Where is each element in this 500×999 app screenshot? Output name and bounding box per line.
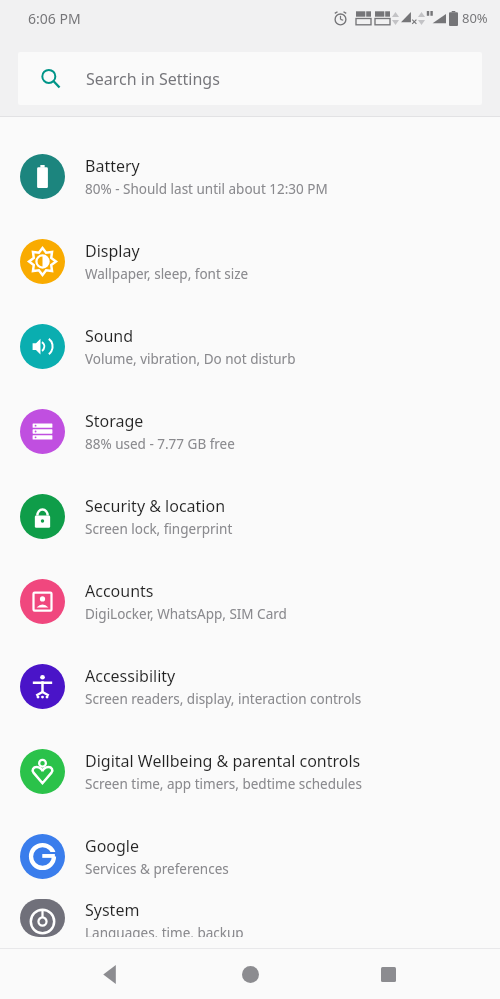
staticText: Screen readers, display, interaction con… [85, 690, 362, 708]
staticText: Sound [85, 325, 134, 347]
button[interactable]: Accounts [0, 559, 500, 644]
staticText: Google [85, 835, 140, 857]
staticText: Screen lock, fingerprint [85, 520, 233, 538]
button[interactable]: Accessibility [0, 644, 500, 729]
button[interactable]: Digital Wellbeing & parental controls [0, 729, 500, 814]
staticText: System [85, 899, 140, 921]
staticText: 88% used - 7.77 GB free [85, 435, 235, 453]
staticText: Accounts [85, 580, 154, 602]
button[interactable]: Battery [0, 134, 500, 219]
button[interactable]: Sound [0, 304, 500, 389]
button[interactable]: Security & location [0, 474, 500, 559]
staticText: Battery [85, 155, 140, 177]
button[interactable]: Recent apps [363, 949, 413, 999]
staticText: 80% - Should last until about 12:30 PM [85, 180, 328, 198]
staticText: Security & location [85, 495, 226, 517]
staticText: Search in Settings [86, 68, 220, 90]
button[interactable]: Home [225, 949, 275, 999]
staticText: Screen time, app timers, bedtime schedul… [85, 775, 362, 793]
staticText: Languages, time, backup [85, 924, 244, 937]
staticText: 80% [462, 9, 488, 27]
staticText: Digital Wellbeing & parental controls [85, 750, 361, 772]
button[interactable]: Display [0, 219, 500, 304]
staticText: Display [85, 240, 140, 262]
staticText: Wallpaper, sleep, font size [85, 265, 249, 283]
staticText: 6:06 PM [28, 9, 81, 28]
button[interactable]: Back [85, 949, 135, 999]
staticText: Accessibility [85, 665, 176, 687]
button[interactable]: Storage [0, 389, 500, 474]
button[interactable]: System [0, 899, 500, 937]
staticText: DigiLocker, WhatsApp, SIM Card [85, 605, 287, 623]
staticText: Storage [85, 410, 144, 432]
staticText: Volume, vibration, Do not disturb [85, 350, 296, 368]
button[interactable]: Google [0, 814, 500, 899]
staticText: Services & preferences [85, 860, 229, 878]
button[interactable]: Search in Settings [18, 52, 482, 105]
